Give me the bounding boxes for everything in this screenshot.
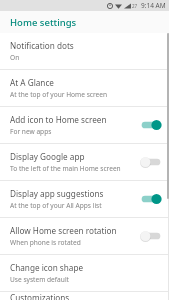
staticText: At the top of your Home screen — [10, 90, 108, 99]
button[interactable]: At A Glance — [0, 70, 169, 106]
button[interactable]: Notification dots — [0, 33, 169, 69]
staticText: Change icon shape — [10, 262, 84, 273]
staticText: At the top of your All Apps list — [10, 201, 102, 210]
staticText: Add icon to Home screen — [10, 114, 107, 125]
button[interactable]: Toggle on — [139, 191, 163, 207]
button[interactable]: Display app suggestions — [0, 181, 169, 217]
staticText: Customizations — [10, 292, 70, 300]
button[interactable]: Display Google app — [0, 144, 169, 180]
button[interactable]: Customizations — [0, 292, 169, 300]
staticText: Home settings — [10, 16, 77, 29]
staticText: 9:14 AM — [141, 1, 166, 10]
button[interactable]: Toggle off — [139, 154, 163, 170]
button[interactable]: Add icon to Home screen — [0, 107, 169, 143]
staticText: Allow Home screen rotation — [10, 225, 117, 236]
staticText: Notification dots — [10, 40, 74, 51]
button[interactable]: Allow Home screen rotation — [0, 218, 169, 254]
button[interactable]: Toggle on — [139, 117, 163, 133]
staticText: To the left of the main Home screen — [10, 164, 121, 173]
staticText: On — [10, 53, 20, 62]
staticText: 27 — [132, 3, 138, 9]
button[interactable]: Change icon shape — [0, 255, 169, 291]
staticText: Display app suggestions — [10, 188, 104, 199]
staticText: When phone is rotated — [10, 238, 81, 247]
staticText: Use system default — [10, 275, 69, 284]
staticText: For new apps — [10, 127, 52, 136]
staticText: Display Google app — [10, 151, 85, 162]
button[interactable]: Toggle off — [139, 228, 163, 244]
staticText: At A Glance — [10, 77, 54, 88]
